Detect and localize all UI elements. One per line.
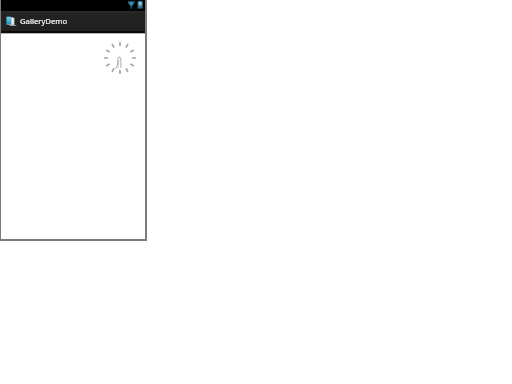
other: Battery xyxy=(137,0,144,11)
other: Wi-Fi signal xyxy=(127,0,136,11)
staticText: GalleryDemo xyxy=(20,16,68,26)
button[interactable]: GalleryDemo xyxy=(1,11,145,31)
